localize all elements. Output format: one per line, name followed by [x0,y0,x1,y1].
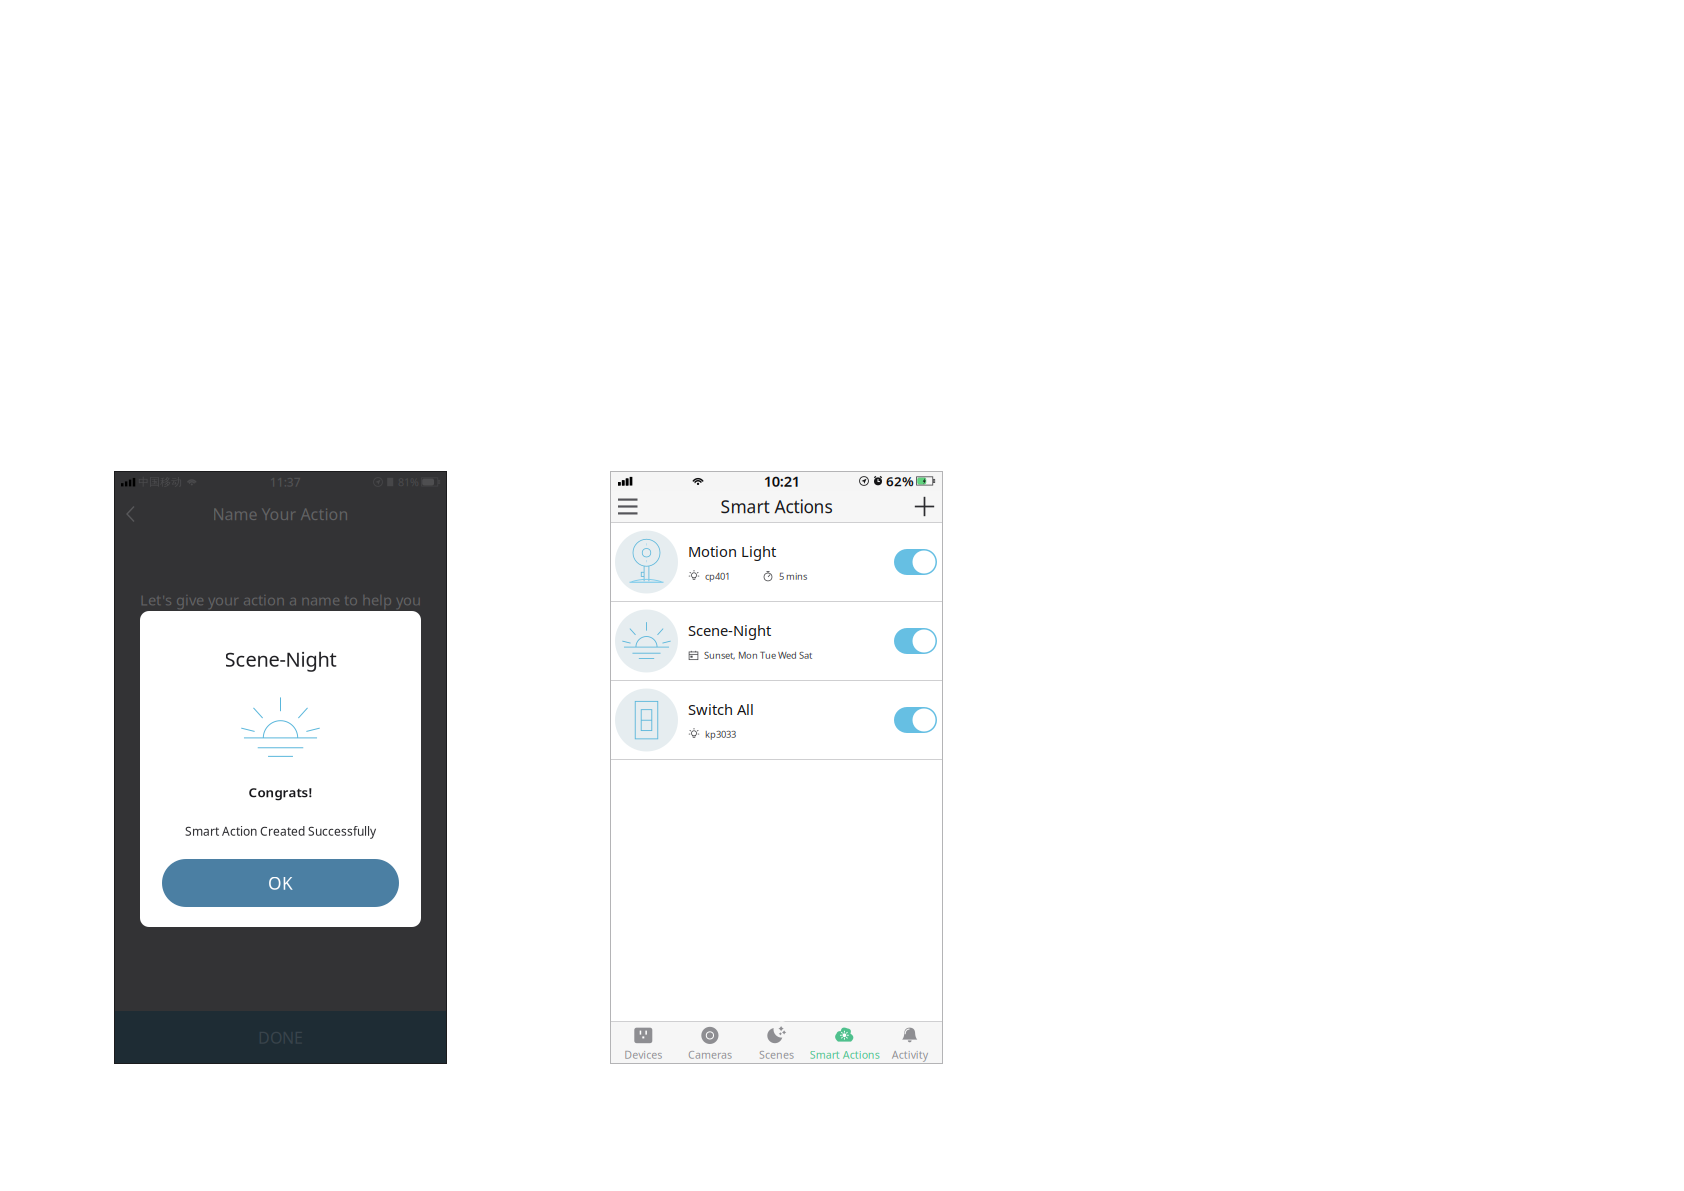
button[interactable]: Devices [610,1022,677,1064]
button[interactable]: Activity [876,1022,943,1064]
staticText: Scenes [759,1047,794,1062]
button[interactable]: Smart Actions [810,1022,876,1064]
button[interactable]: Switch All [610,681,943,759]
staticText: Name Your Action [212,503,348,525]
button[interactable]: DONE [114,1011,447,1064]
button[interactable]: Back [125,493,165,535]
staticText: Devices [624,1047,662,1062]
staticText: 81% [398,475,419,489]
button[interactable]: Add [895,491,935,522]
staticText: OK [268,871,293,894]
button[interactable]: Scene-Night [610,602,943,680]
staticText: cp401 [705,570,730,582]
staticText: Congrats! [248,783,312,801]
staticText: Motion Light [688,542,776,561]
staticText: Smart Actions [720,495,832,518]
staticText: Cameras [688,1047,732,1062]
button[interactable]: OK [162,859,399,907]
staticText: Sunset, Mon Tue Wed Sat [704,649,812,661]
staticText: Smart Action Created Successfully [185,823,376,839]
button[interactable]: Scenes [743,1022,810,1064]
staticText: 5 mins [779,570,807,582]
staticText: DONE [258,1027,303,1048]
staticText: 11:37 [270,474,301,490]
button[interactable]: Motion Light [610,523,943,601]
button[interactable]: Cameras [677,1022,743,1064]
staticText: 10:21 [764,471,800,491]
staticText: kp3033 [705,728,736,740]
staticText: Let's give your action a name to help yo… [140,590,421,609]
staticText: Switch All [688,700,754,719]
staticText: 中国移动 [138,475,182,488]
staticText: Smart Actions [810,1047,880,1062]
button[interactable]: Menu [618,491,658,522]
staticText: 62% [886,472,914,490]
staticText: Scene-Night [224,646,336,672]
staticText: Scene-Night [688,621,771,640]
staticText: Activity [892,1047,928,1062]
